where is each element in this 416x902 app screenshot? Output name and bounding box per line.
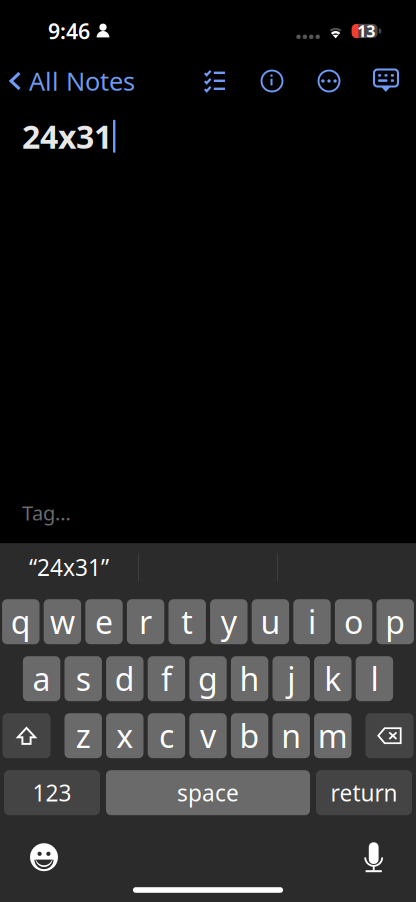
staticText: 123 [32, 778, 71, 808]
button[interactable]: s [64, 656, 102, 701]
button[interactable]: c [148, 713, 185, 758]
staticText: f [161, 657, 172, 700]
staticText: p [385, 600, 405, 643]
button[interactable]: g [189, 656, 227, 701]
button[interactable]: 123 [4, 770, 100, 815]
button[interactable]: m [314, 713, 351, 758]
staticText: k [324, 657, 341, 700]
button[interactable]: return [316, 770, 412, 815]
staticText: x [116, 714, 133, 757]
button[interactable]: d [106, 656, 143, 701]
staticText: a [33, 657, 51, 700]
staticText: y [221, 600, 237, 643]
staticText: n [281, 714, 301, 757]
staticText: q [11, 600, 31, 643]
button[interactable]: j [272, 656, 310, 701]
staticText: i [308, 600, 316, 643]
button[interactable]: Delete [365, 713, 413, 758]
button[interactable]: space [106, 770, 310, 815]
button[interactable]: q [2, 599, 39, 644]
button[interactable]: b [231, 713, 268, 758]
staticText: u [260, 600, 280, 643]
staticText: 9:46 [48, 17, 90, 45]
staticText: o [344, 600, 363, 643]
button[interactable]: Dictation [345, 835, 403, 879]
button[interactable]: i [293, 599, 331, 644]
staticText: c [159, 714, 174, 757]
button[interactable]: l [356, 656, 393, 701]
staticText: v [200, 714, 216, 757]
button[interactable]: r [127, 599, 164, 644]
staticText: l [370, 657, 378, 700]
button[interactable]: h [231, 656, 268, 701]
button[interactable]: Hide Keyboard [364, 59, 408, 103]
button[interactable]: t [168, 599, 206, 644]
staticText: b [240, 714, 260, 757]
staticText: w [50, 600, 75, 643]
staticText: h [240, 657, 260, 700]
staticText: 13 [357, 20, 375, 42]
staticText: 24x31 [22, 115, 112, 157]
button[interactable]: y [210, 599, 247, 644]
button[interactable]: k [314, 656, 351, 701]
staticText: z [76, 714, 91, 757]
staticText: space [177, 778, 239, 808]
button[interactable]: p [376, 599, 414, 644]
staticText: All Notes [29, 64, 135, 98]
button[interactable]: w [44, 599, 81, 644]
button[interactable]: e [85, 599, 123, 644]
button[interactable]: f [148, 656, 185, 701]
staticText: g [198, 657, 218, 700]
button[interactable]: o [335, 599, 372, 644]
button[interactable]: a [23, 656, 60, 701]
staticText: s [76, 657, 91, 700]
button[interactable]: u [252, 599, 289, 644]
button[interactable]: Emoji [15, 835, 73, 879]
staticText: j [287, 657, 295, 700]
button[interactable]: All Notes [0, 59, 143, 103]
button[interactable]: n [272, 713, 310, 758]
staticText: Tag… [22, 499, 71, 526]
button[interactable]: x [106, 713, 143, 758]
button[interactable]: z [64, 713, 102, 758]
button[interactable]: More [307, 59, 351, 103]
staticText: d [115, 657, 135, 700]
staticText: return [330, 778, 397, 808]
button[interactable]: Info [250, 59, 294, 103]
staticText: t [181, 600, 193, 643]
staticText: m [318, 714, 348, 757]
button[interactable]: Shift [2, 713, 50, 758]
button[interactable]: v [189, 713, 227, 758]
staticText: e [95, 600, 113, 643]
button[interactable]: Checklist [193, 59, 237, 103]
staticText: “24x31” [29, 552, 109, 582]
staticText: r [139, 600, 152, 643]
